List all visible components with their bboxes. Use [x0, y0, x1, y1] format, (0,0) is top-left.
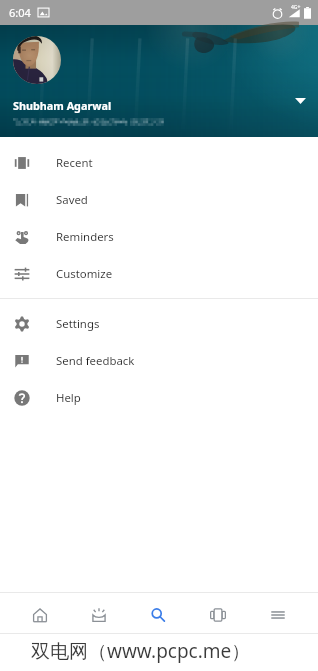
button[interactable]: Updates [69, 593, 128, 633]
staticText: Recent [56, 155, 93, 171]
staticText: 双电网（www.pcpc.me） [31, 638, 251, 664]
button[interactable]: Saved [0, 181, 318, 218]
button[interactable]: Profile photo [13, 36, 61, 84]
staticText: Reminders [56, 229, 114, 245]
staticText: Send feedback [56, 353, 135, 369]
staticText: 6:04 [9, 5, 31, 20]
button[interactable]: Customize [0, 255, 318, 292]
button[interactable]: Send feedback [0, 342, 318, 379]
staticText: Saved [56, 192, 88, 208]
staticText: Settings [56, 316, 100, 332]
button[interactable]: Settings [0, 305, 318, 342]
staticText: 4G+ [291, 4, 301, 11]
button[interactable]: Recent [0, 144, 318, 181]
staticText: Customize [56, 266, 113, 282]
button[interactable]: More options [248, 593, 308, 633]
staticText: Shubham Agarwal [13, 98, 112, 113]
button[interactable]: Home [10, 593, 69, 633]
button[interactable]: Switch account [282, 83, 318, 119]
button[interactable]: Reminders [0, 218, 318, 255]
staticText: Help [56, 390, 81, 406]
button[interactable]: Tabs [188, 593, 248, 633]
button[interactable]: Help [0, 379, 318, 416]
button[interactable]: Search [128, 593, 188, 633]
